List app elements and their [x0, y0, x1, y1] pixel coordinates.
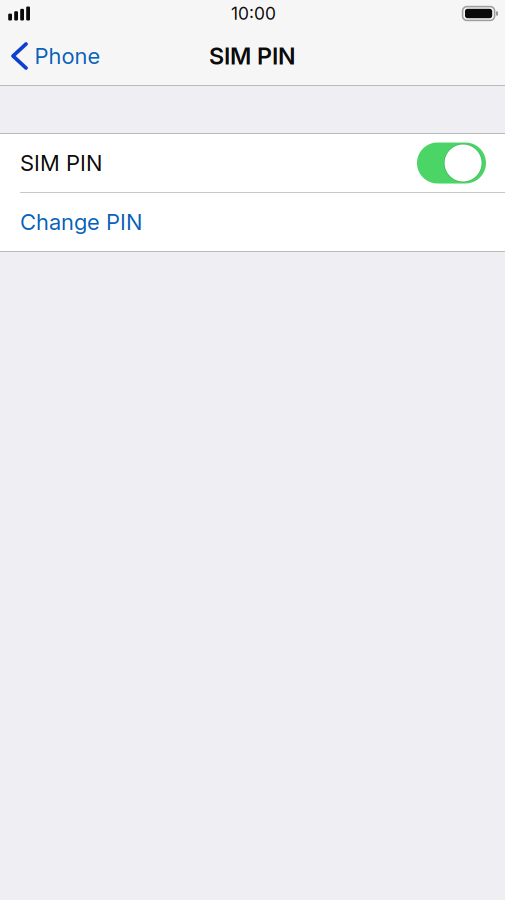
button[interactable]: SIM PIN: [0, 134, 505, 192]
staticText: SIM PIN: [209, 42, 296, 70]
staticText: Change PIN: [20, 209, 142, 235]
staticText: SIM PIN: [20, 150, 102, 176]
button[interactable]: Change PIN: [0, 193, 505, 251]
staticText: Phone: [34, 43, 100, 69]
staticText: 10:00: [231, 3, 276, 24]
button[interactable]: Phone: [0, 32, 112, 80]
